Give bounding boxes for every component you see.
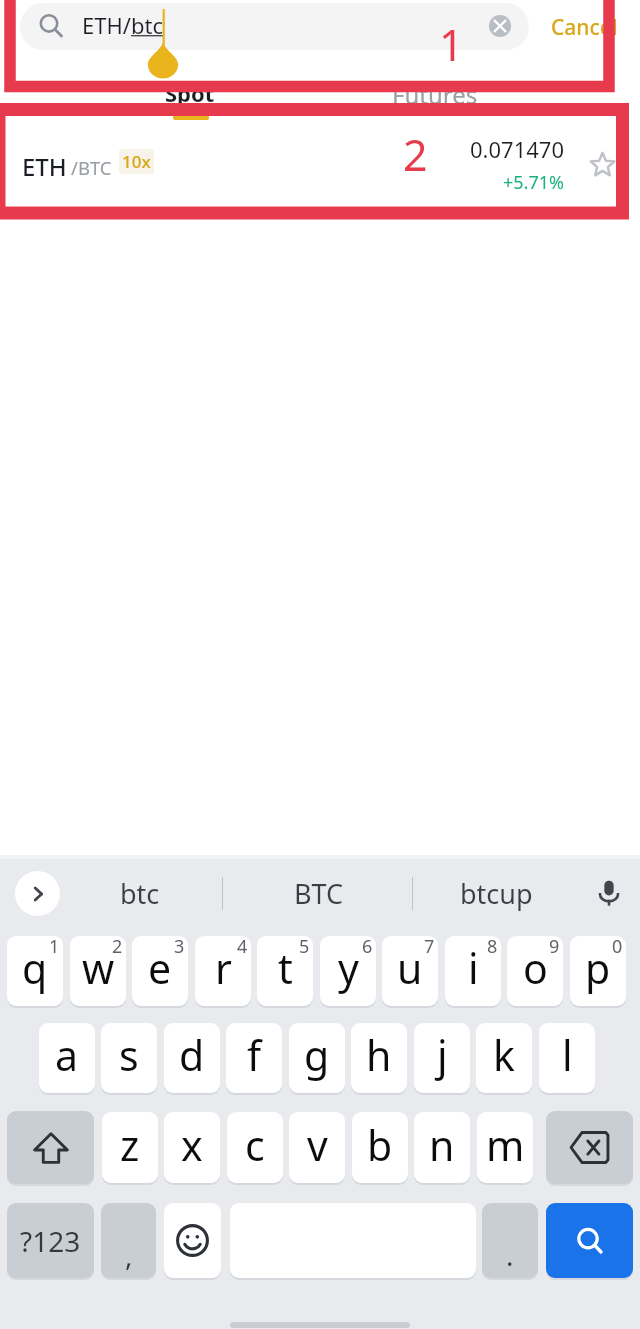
button[interactable]: More suggestions <box>15 871 60 916</box>
button[interactable]: Spot <box>100 78 280 116</box>
button[interactable]: u <box>382 936 438 1006</box>
staticText: 1 <box>439 15 464 74</box>
button[interactable]: r <box>195 936 251 1006</box>
button[interactable]: btcup <box>412 855 580 932</box>
button[interactable]: Search <box>546 1203 633 1278</box>
button[interactable]: Period <box>482 1203 538 1278</box>
button[interactable]: j <box>414 1023 470 1093</box>
staticText: BTC <box>294 875 344 912</box>
button[interactable]: s <box>101 1023 157 1093</box>
button[interactable]: g <box>289 1023 345 1093</box>
staticText: ETH/btc <box>82 10 163 40</box>
staticText: 0.071470 <box>470 134 564 164</box>
button[interactable]: x <box>164 1112 220 1183</box>
button[interactable]: btc <box>70 855 210 932</box>
staticText: y <box>338 940 359 996</box>
button[interactable]: n <box>414 1112 470 1183</box>
button[interactable]: y <box>320 936 376 1006</box>
staticText: 4 <box>237 936 248 959</box>
staticText: k <box>493 1027 515 1083</box>
button[interactable]: p <box>570 936 626 1006</box>
staticText: +5.71% <box>503 170 564 195</box>
button[interactable]: b <box>352 1112 408 1183</box>
staticText: 7 <box>424 936 435 959</box>
button[interactable]: t <box>257 936 313 1006</box>
staticText: 2 <box>403 125 428 184</box>
button[interactable]: Emoji <box>164 1203 221 1278</box>
button[interactable]: Comma <box>101 1203 156 1278</box>
button[interactable]: a <box>39 1023 95 1093</box>
staticText: ?123 <box>20 1222 81 1260</box>
staticText: x <box>181 1117 203 1173</box>
staticText: ETH <box>22 150 67 183</box>
staticText: Spot <box>165 78 215 108</box>
button[interactable]: Futures <box>345 78 525 116</box>
staticText: f <box>247 1027 262 1083</box>
button[interactable]: Add to favourites <box>586 148 619 181</box>
button[interactable]: c <box>227 1112 283 1183</box>
staticText: t <box>278 940 293 996</box>
button[interactable]: Symbols <box>7 1203 94 1278</box>
staticText: d <box>179 1027 205 1083</box>
staticText: w <box>82 940 115 996</box>
staticText: 8 <box>487 936 498 959</box>
staticText: 9 <box>549 936 560 959</box>
button[interactable]: d <box>164 1023 220 1093</box>
staticText: p <box>585 940 611 996</box>
staticText: i <box>468 940 479 996</box>
button[interactable]: w <box>70 936 126 1006</box>
button[interactable]: Search field <box>20 3 529 50</box>
staticText: j <box>437 1027 448 1083</box>
staticText: /BTC <box>71 155 112 180</box>
button[interactable]: i <box>445 936 501 1006</box>
staticText: Cancel <box>551 13 618 42</box>
staticText: l <box>562 1027 573 1083</box>
other: Text cursor <box>144 6 188 50</box>
staticText: btcup <box>460 875 533 912</box>
button[interactable]: m <box>477 1112 533 1183</box>
staticText: s <box>119 1027 139 1083</box>
staticText: v <box>307 1117 328 1173</box>
staticText: 5 <box>299 936 310 959</box>
button[interactable]: Cancel <box>547 10 622 45</box>
staticText: 3 <box>174 936 185 959</box>
staticText: u <box>397 940 423 996</box>
staticText: o <box>523 940 548 996</box>
button[interactable]: o <box>507 936 563 1006</box>
staticText: btc <box>120 875 160 912</box>
button[interactable]: q <box>7 936 63 1006</box>
button[interactable]: Backspace <box>546 1111 633 1184</box>
button[interactable]: BTC <box>232 855 406 932</box>
button[interactable]: v <box>289 1112 345 1183</box>
staticText: 2 <box>112 936 123 959</box>
staticText: h <box>366 1027 392 1083</box>
staticText: Futures <box>392 78 478 111</box>
staticText: g <box>304 1027 330 1083</box>
button[interactable]: f <box>226 1023 282 1093</box>
staticText: b <box>367 1117 393 1173</box>
button[interactable]: Shift <box>7 1111 94 1184</box>
staticText: n <box>429 1117 455 1173</box>
staticText: e <box>148 940 172 996</box>
staticText: q <box>22 940 48 996</box>
staticText: 6 <box>362 936 373 959</box>
button[interactable]: k <box>476 1023 532 1093</box>
staticText: a <box>55 1027 79 1083</box>
button[interactable]: l <box>539 1023 595 1093</box>
button[interactable]: Voice input <box>585 869 633 917</box>
button[interactable]: e <box>132 936 188 1006</box>
staticText: r <box>215 940 232 996</box>
staticText: m <box>486 1117 525 1173</box>
button[interactable]: h <box>351 1023 407 1093</box>
button[interactable]: z <box>102 1112 158 1183</box>
staticText: c <box>245 1117 265 1173</box>
button[interactable]: ETH / BTC pair <box>0 126 640 208</box>
staticText: . <box>506 1236 514 1274</box>
staticText: , <box>125 1236 133 1274</box>
staticText: 0 <box>612 936 623 959</box>
staticText: z <box>120 1117 140 1173</box>
staticText: 10x <box>122 150 151 173</box>
staticText: 1 <box>49 936 60 959</box>
button[interactable]: Clear search <box>484 10 516 42</box>
